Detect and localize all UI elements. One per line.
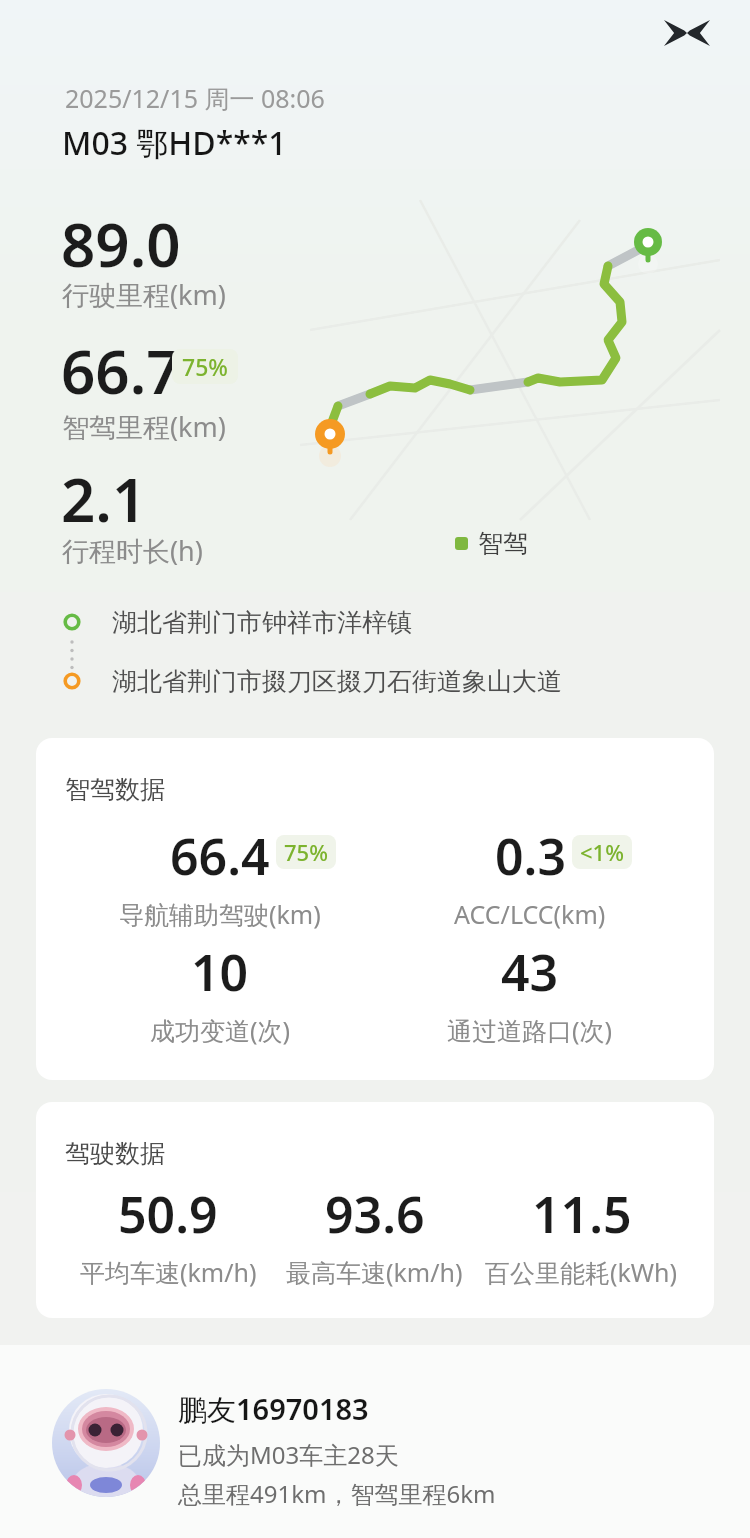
staticText: 89.0 [61,203,181,285]
staticText: 智驾数据 [65,774,165,805]
staticText: 75% [284,837,328,867]
staticText: 0.3 [495,822,566,890]
staticText: 通过道路口(次) [447,1013,613,1047]
staticText: 行驶里程(km) [62,276,226,313]
button[interactable]: 鹏友16970183 [0,1345,750,1538]
staticText: M03 鄂HD***1 [62,121,287,165]
staticText: 行程时长(h) [62,532,203,569]
staticText: 湖北省荆门市掇刀区掇刀石街道象山大道 [112,666,562,697]
staticText: 66.7 [61,330,181,412]
staticText: 鹏友16970183 [178,1389,369,1429]
staticText: 总里程491km，智驾里程6km [178,1477,496,1510]
staticText: <1% [580,837,624,867]
staticText: 50.9 [118,1180,218,1248]
staticText: 75% [182,351,228,382]
staticText: 最高车速(km/h) [286,1255,463,1289]
staticText: 2025/12/15 周一 08:06 [65,81,325,115]
staticText: 11.5 [532,1180,632,1248]
staticText: 已成为M03车主28天 [178,1438,399,1471]
staticText: 2.1 [61,458,147,540]
staticText: 百公里能耗(kWh) [485,1255,678,1289]
staticText: 智驾里程(km) [62,408,226,445]
staticText: 43 [501,938,559,1006]
staticText: 成功变道(次) [150,1013,291,1047]
staticText: ACC/LCC(km) [454,897,606,931]
staticText: 93.6 [325,1180,425,1248]
staticText: 智驾 [478,528,528,559]
staticText: 湖北省荆门市钟祥市洋梓镇 [112,607,412,638]
staticText: 驾驶数据 [65,1138,165,1169]
staticText: 66.4 [170,822,270,890]
staticText: 平均车速(km/h) [80,1255,257,1289]
staticText: 导航辅助驾驶(km) [119,897,321,931]
staticText: 10 [191,938,249,1006]
